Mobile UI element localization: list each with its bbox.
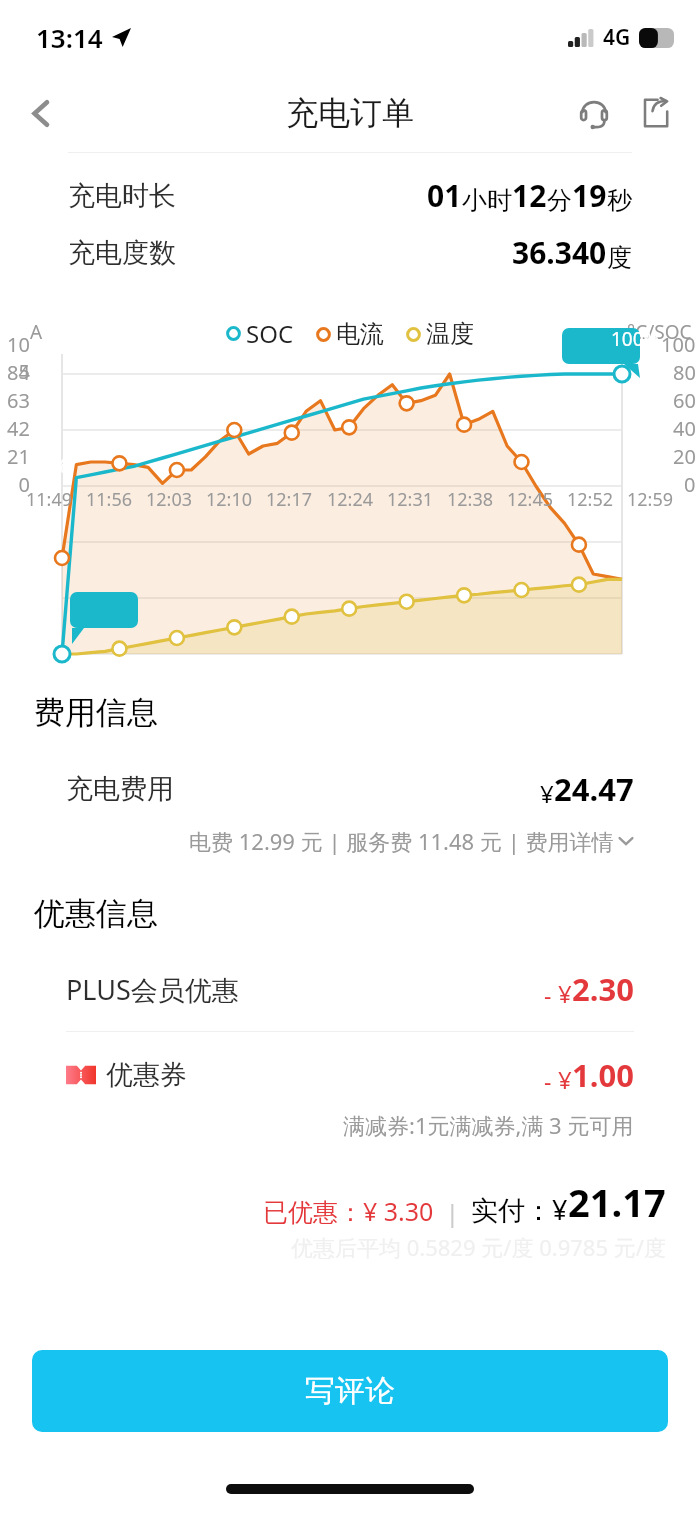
button[interactable]: Customer service [570,89,618,137]
staticText: 12:38 [447,487,494,512]
staticText: 12:52 [567,487,614,512]
staticText: 11:56 [86,487,133,512]
staticText: 充电时长 [68,179,176,213]
staticText: ¥ [552,1191,568,1228]
staticText: 100% [611,326,660,352]
staticText: ¥ 3.30 [363,1194,434,1228]
staticText: 优惠信息 [34,894,158,933]
staticText: 0% [41,453,68,479]
staticText: 19 [572,175,607,216]
staticText: 36.340 [512,232,607,273]
staticText: 0 [4,471,30,498]
staticText: ¥ [558,1063,572,1096]
staticText: 费用信息 [34,693,158,732]
staticText: ¥ [540,777,554,810]
staticText: 写评论 [305,1372,395,1410]
staticText: 充电费用 [66,772,174,806]
staticText: - [544,1065,558,1096]
staticText: 80 [673,359,696,386]
staticText: 分 [547,185,572,216]
staticText: 2.30 [572,968,634,1010]
staticText: 40 [673,415,696,442]
staticText: SOC [246,317,294,350]
staticText: 21 [4,443,30,470]
staticText: 12:31 [387,487,434,512]
staticText: PLUS会员优惠 [66,971,239,1008]
staticText: 11:49 [26,487,73,512]
staticText: - [544,979,558,1010]
staticText: 20 [673,443,696,470]
staticText: 63 [4,387,30,414]
staticText: 度 [607,242,632,273]
staticText: 24.47 [554,768,634,810]
staticText: 满减券:1元满减券,满 3 元可用 [343,1110,634,1140]
staticText: 实付： [471,1194,552,1228]
staticText: 电费 12.99 元 | 服务费 11.48 元 | 费用详情 [189,826,614,856]
staticText: °C/SOC [627,319,692,345]
button[interactable]: PLUS会员优惠 [66,947,634,1031]
staticText: 12:10 [206,487,253,512]
staticText: 小时 [462,185,512,216]
staticText: 充电订单 [286,93,414,133]
staticText: 84 [4,359,30,386]
staticText: 12:24 [327,487,374,512]
staticText: 12:59 [627,487,674,512]
staticText: 电流 [336,319,384,349]
staticText: 21.17 [568,1176,666,1228]
staticText: 01 [427,175,462,216]
staticText: ¥ [558,977,572,1010]
button[interactable]: 充电费用 [34,746,666,878]
staticText: 温度 [426,319,474,349]
staticText: 优惠券 [106,1058,187,1092]
staticText: 100 [661,331,696,358]
staticText: 42 [4,415,30,442]
staticText: 12 [512,175,547,216]
staticText: 优惠后平均 0.5829 元/度 0.9785 元/度 [291,1232,666,1262]
button[interactable]: 写评论 [32,1350,668,1432]
staticText: 12:45 [507,487,554,512]
staticText: 13:14 [36,20,103,55]
staticText: 60 [673,387,696,414]
staticText: 秒 [607,185,632,216]
staticText: A [30,319,43,345]
staticText: 12:03 [146,487,193,512]
staticText: 12:17 [266,487,313,512]
staticText: 充电度数 [68,236,176,270]
staticText: 4G [603,23,631,52]
button[interactable]: 优惠券 [34,1032,666,1164]
staticText: 105 [4,331,30,385]
button[interactable]: Back [16,88,66,138]
button[interactable]: Share [630,89,678,137]
staticText: 0 [684,471,696,498]
staticText: | [434,1197,471,1228]
staticText: 已优惠： [263,1197,363,1228]
staticText: 1.00 [572,1054,634,1096]
